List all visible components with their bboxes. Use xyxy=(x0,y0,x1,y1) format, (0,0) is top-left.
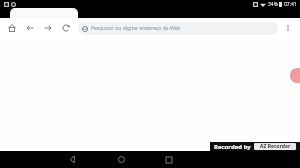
staticText: 07:41 xyxy=(284,1,297,8)
button[interactable]: Recording control xyxy=(290,68,300,83)
button[interactable] xyxy=(10,8,78,18)
button[interactable]: Back xyxy=(24,22,36,34)
button[interactable]: Forward xyxy=(42,22,54,34)
staticText: Pesquisar ou digitar endereço da Web xyxy=(91,25,181,32)
button[interactable]: Reload xyxy=(60,22,72,34)
button[interactable]: Home xyxy=(6,22,18,34)
staticText: 34% xyxy=(268,1,278,8)
button[interactable]: Pesquisar ou digitar endereço da Web xyxy=(78,22,278,35)
button[interactable]: Back xyxy=(63,151,81,168)
staticText: AZ Recorder xyxy=(260,143,291,150)
button[interactable]: More options xyxy=(282,22,294,34)
staticText: Recorded by xyxy=(214,143,251,151)
button[interactable]: Home xyxy=(112,151,130,168)
button[interactable]: Recents xyxy=(160,151,178,168)
